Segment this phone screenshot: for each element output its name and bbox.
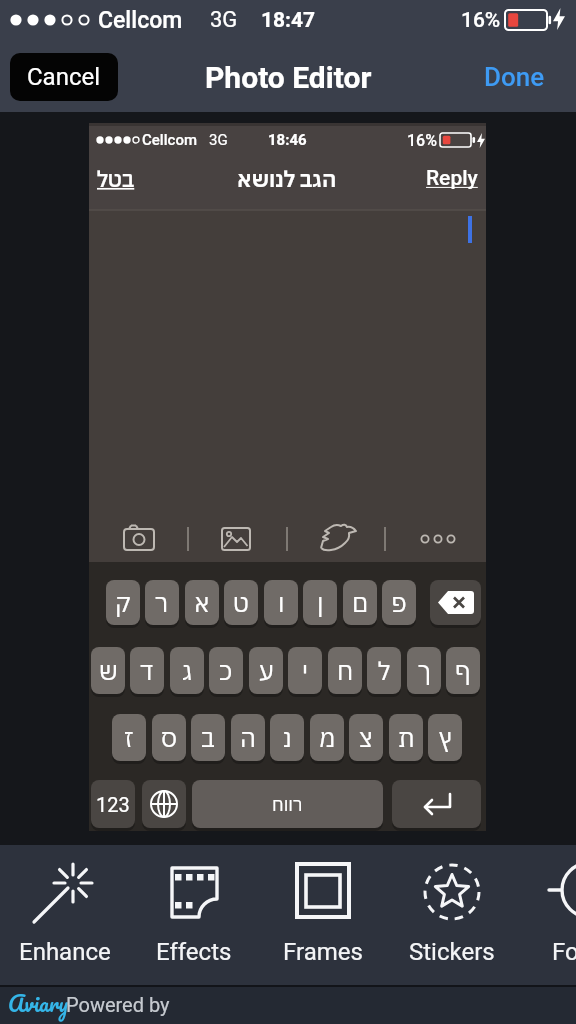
- staticText: 3G: [210, 7, 238, 33]
- staticText: Frames: [283, 938, 363, 966]
- staticText: 18:46: [268, 131, 307, 149]
- staticText: 16%: [407, 131, 437, 150]
- button[interactable]: צ: [349, 714, 383, 761]
- button[interactable]: ש: [91, 647, 125, 694]
- staticText: 18:47: [261, 8, 316, 33]
- button[interactable]: ז: [112, 714, 146, 761]
- button[interactable]: [415, 521, 459, 557]
- button[interactable]: ם: [343, 580, 377, 625]
- staticText: ח: [337, 654, 354, 687]
- button[interactable]: ת: [389, 714, 423, 761]
- staticText: א: [194, 586, 210, 619]
- button[interactable]: [119, 521, 161, 557]
- staticText: פ: [391, 586, 407, 619]
- staticText: ץ: [439, 721, 452, 754]
- staticText: Cellcom: [142, 131, 197, 149]
- staticText: הגב לנושא: [237, 164, 337, 193]
- staticText: ז: [124, 721, 134, 754]
- button[interactable]: Done: [466, 53, 562, 101]
- staticText: ם: [352, 586, 369, 619]
- button[interactable]: בטל: [97, 162, 161, 194]
- button[interactable]: א: [185, 580, 219, 625]
- staticText: Powered by: [66, 993, 170, 1016]
- button[interactable]: ח: [328, 647, 362, 694]
- staticText: ך: [418, 654, 431, 687]
- staticText: בטל: [97, 164, 135, 193]
- button[interactable]: ר: [145, 580, 179, 625]
- button[interactable]: [217, 521, 257, 557]
- staticText: ת: [398, 721, 415, 754]
- button[interactable]: ץ: [428, 714, 462, 761]
- staticText: ד: [140, 654, 154, 687]
- button[interactable]: Reply: [389, 162, 478, 194]
- button[interactable]: [392, 780, 481, 828]
- button[interactable]: ו: [264, 580, 298, 625]
- staticText: Focus: [552, 938, 576, 966]
- button[interactable]: [315, 521, 359, 557]
- button[interactable]: ד: [130, 647, 164, 694]
- button[interactable]: [387, 845, 517, 985]
- staticText: ט: [233, 586, 250, 619]
- staticText: Photo Editor: [205, 60, 372, 95]
- staticText: כ: [219, 654, 233, 687]
- staticText: ר: [155, 586, 169, 619]
- staticText: Effects: [156, 938, 232, 966]
- button[interactable]: ך: [407, 647, 441, 694]
- staticText: ל: [378, 654, 390, 687]
- button[interactable]: ב: [191, 714, 225, 761]
- staticText: ע: [259, 654, 274, 687]
- staticText: ב: [201, 721, 215, 754]
- button[interactable]: י: [288, 647, 322, 694]
- staticText: Aviary: [8, 985, 68, 1022]
- staticText: ה: [240, 721, 256, 754]
- staticText: מ: [319, 721, 336, 754]
- button[interactable]: [258, 845, 388, 985]
- button[interactable]: ה: [231, 714, 265, 761]
- staticText: צ: [359, 721, 373, 754]
- staticText: ף: [455, 654, 471, 687]
- button[interactable]: רווח: [192, 780, 383, 828]
- staticText: Cancel: [27, 63, 101, 91]
- staticText: ן: [317, 586, 324, 619]
- button[interactable]: [430, 580, 481, 625]
- staticText: ג: [182, 654, 193, 687]
- staticText: י: [302, 654, 309, 687]
- staticText: Enhance: [19, 938, 111, 966]
- staticText: ש: [99, 654, 118, 687]
- button[interactable]: ל: [367, 647, 401, 694]
- button[interactable]: ק: [106, 580, 140, 625]
- button[interactable]: נ: [270, 714, 304, 761]
- button[interactable]: ט: [224, 580, 258, 625]
- button[interactable]: מ: [310, 714, 344, 761]
- staticText: 3G: [209, 131, 228, 149]
- button[interactable]: ן: [303, 580, 337, 625]
- button[interactable]: [129, 845, 259, 985]
- staticText: Cellcom: [98, 7, 183, 34]
- button[interactable]: פ: [382, 580, 416, 625]
- button[interactable]: 123: [91, 780, 135, 828]
- staticText: ו: [278, 586, 285, 619]
- staticText: רווח: [272, 793, 303, 816]
- button[interactable]: ג: [170, 647, 204, 694]
- button[interactable]: [142, 780, 186, 828]
- staticText: 123: [96, 793, 130, 816]
- button[interactable]: ף: [446, 647, 480, 694]
- staticText: Reply: [426, 166, 478, 191]
- staticText: Done: [484, 62, 545, 92]
- button[interactable]: [0, 845, 130, 985]
- button[interactable]: Cancel: [10, 53, 118, 101]
- staticText: נ: [283, 721, 292, 754]
- staticText: ס: [161, 721, 178, 754]
- staticText: ק: [115, 586, 131, 619]
- staticText: Stickers: [409, 938, 495, 966]
- staticText: 16%: [461, 8, 501, 33]
- button[interactable]: כ: [209, 647, 243, 694]
- button[interactable]: ס: [152, 714, 186, 761]
- button[interactable]: ע: [249, 647, 283, 694]
- button[interactable]: [516, 845, 576, 985]
